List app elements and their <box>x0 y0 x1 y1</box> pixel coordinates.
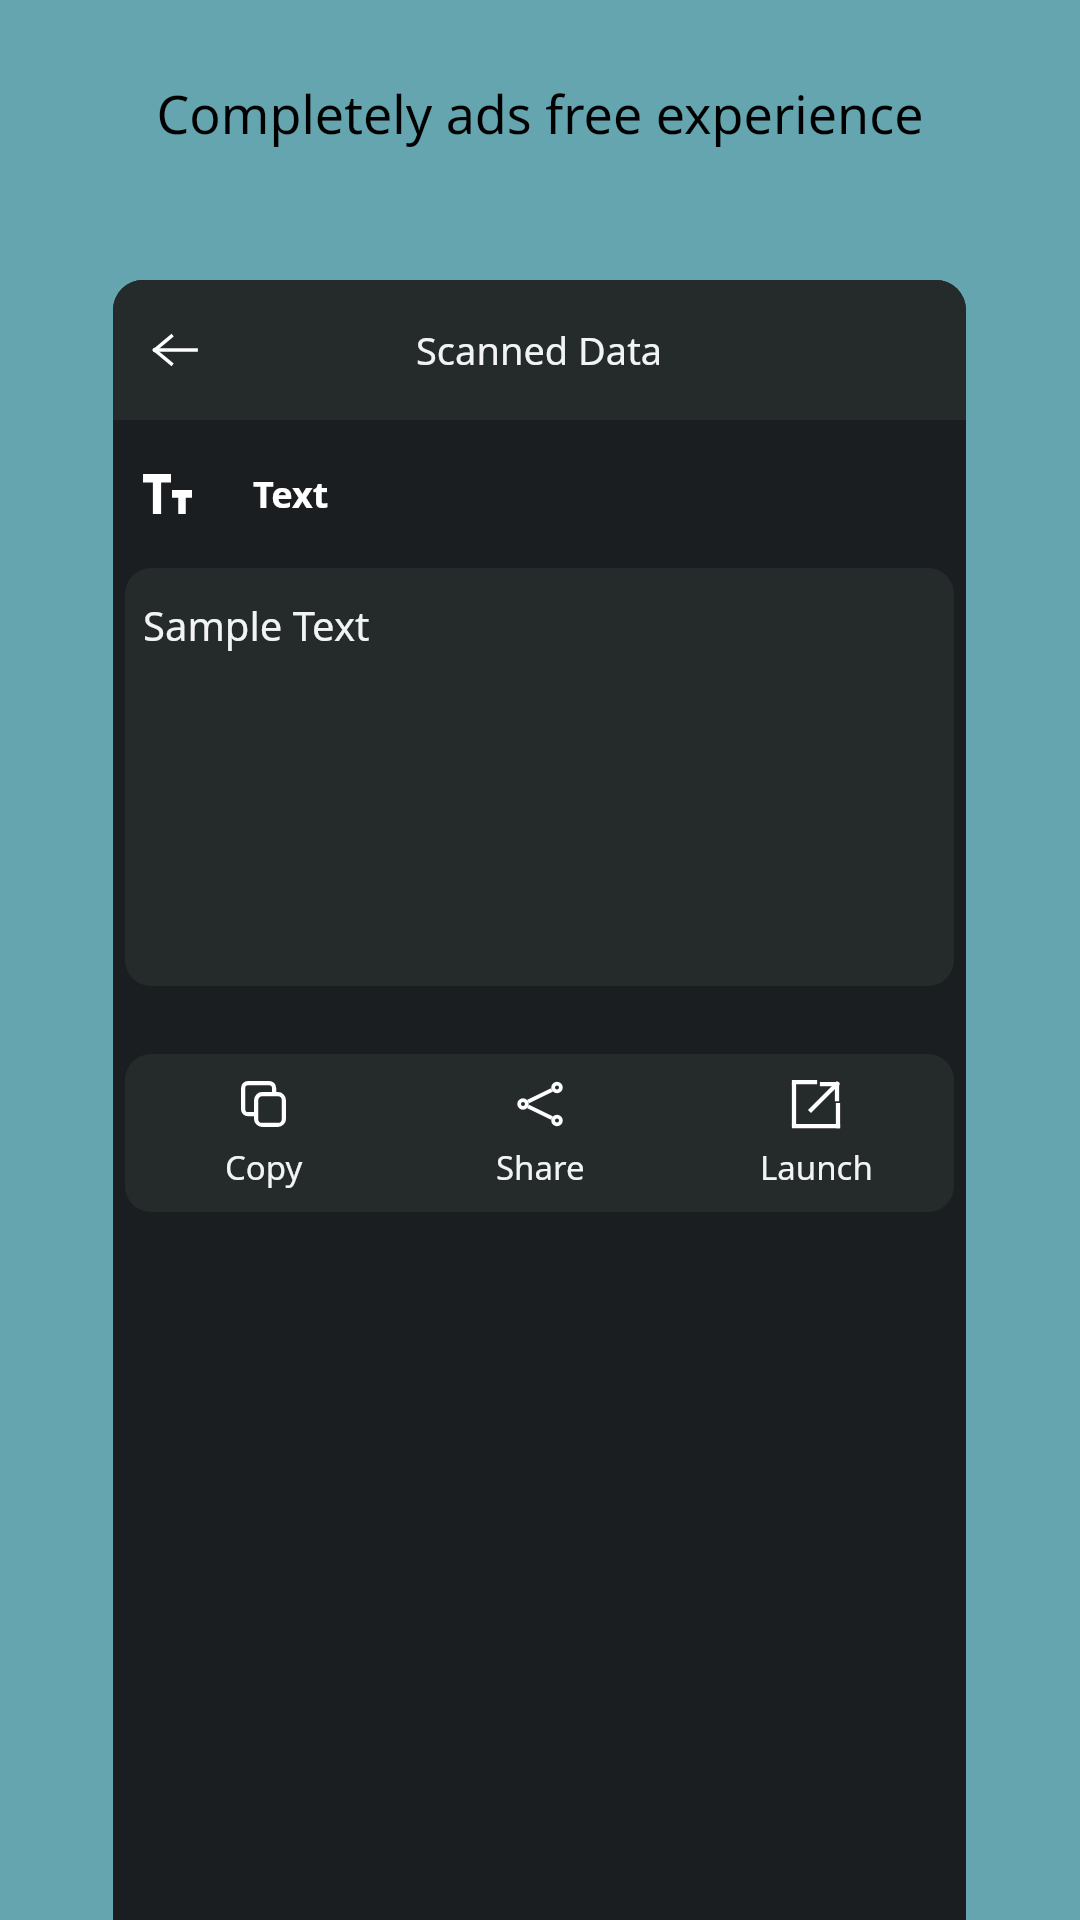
button[interactable]: Copy <box>125 1054 402 1212</box>
staticText: Sample Text <box>143 598 370 652</box>
staticText: Completely ads free experience <box>100 78 980 149</box>
button[interactable]: Sample Text <box>125 568 954 986</box>
button[interactable]: Share <box>402 1054 678 1212</box>
staticText: Share <box>496 1145 585 1190</box>
button[interactable]: Text <box>113 420 966 568</box>
staticText: Copy <box>225 1145 303 1190</box>
button[interactable]: Back <box>133 308 217 392</box>
staticText: Text <box>253 470 329 519</box>
staticText: Scanned Data <box>416 324 663 376</box>
button[interactable]: Launch <box>678 1054 954 1212</box>
staticText: Launch <box>760 1145 873 1190</box>
